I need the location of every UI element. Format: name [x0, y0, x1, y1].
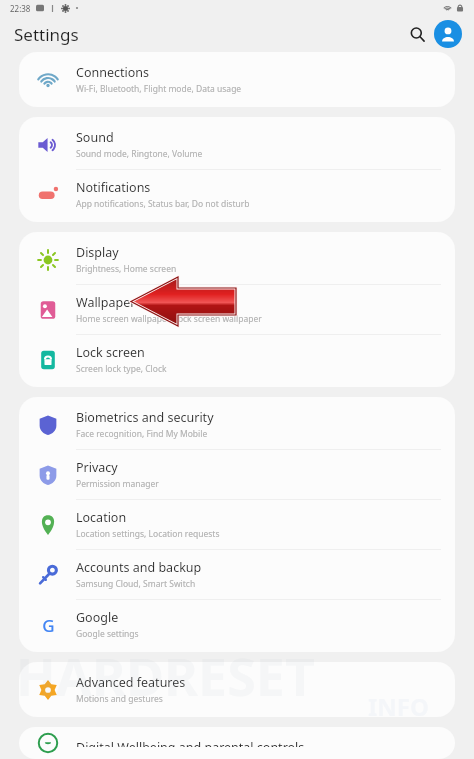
button[interactable]: Notifications	[19, 170, 455, 219]
button[interactable]: Connections	[19, 55, 455, 104]
staticText: Digital Wellbeing and parental controls	[76, 739, 305, 747]
staticText: Advanced features	[76, 674, 186, 691]
button[interactable]: Search	[402, 19, 432, 49]
staticText: Biometrics and security	[76, 409, 214, 426]
staticText: Screen lock type, Clock	[76, 363, 167, 375]
staticText: 22:38	[10, 3, 31, 14]
staticText: Face recognition, Find My Mobile	[76, 428, 208, 440]
staticText: Settings	[14, 23, 79, 46]
button[interactable]: Account	[434, 20, 462, 48]
staticText: App notifications, Status bar, Do not di…	[76, 198, 250, 210]
button[interactable]: Lock screen	[19, 335, 455, 384]
button[interactable]: Accounts and backup	[19, 550, 455, 599]
staticText: Home screen wallpaper, Lock screen wallp…	[76, 313, 262, 325]
button[interactable]: Digital Wellbeing and parental controls	[19, 730, 455, 756]
staticText: Location	[76, 509, 127, 526]
staticText: Connections	[76, 64, 149, 81]
staticText: Accounts and backup	[76, 559, 202, 576]
staticText: Permission manager	[76, 478, 159, 490]
button[interactable]: Wallpaper	[19, 285, 455, 334]
staticText: Samsung Cloud, Smart Switch	[76, 578, 196, 590]
staticText: Display	[76, 244, 119, 261]
staticText: Wallpaper	[76, 294, 136, 311]
staticText: Google settings	[76, 628, 139, 640]
staticText: INFO	[368, 690, 430, 723]
button[interactable]: G	[19, 600, 455, 649]
staticText: Sound	[76, 129, 114, 146]
staticText: Motions and gestures	[76, 693, 163, 705]
staticText: Lock screen	[76, 344, 145, 361]
button[interactable]: Advanced features	[19, 665, 455, 714]
button[interactable]: Display	[19, 235, 455, 284]
staticText: Privacy	[76, 459, 118, 476]
staticText: Location settings, Location requests	[76, 528, 220, 540]
button[interactable]: Sound	[19, 120, 455, 169]
staticText: HARDRESET	[16, 640, 315, 711]
staticText: Google	[76, 609, 119, 626]
button[interactable]: Privacy	[19, 450, 455, 499]
button[interactable]: Location	[19, 500, 455, 549]
staticText: Sound mode, Ringtone, Volume	[76, 148, 203, 160]
staticText: Brightness, Home screen	[76, 263, 177, 275]
staticText: G	[42, 614, 55, 636]
staticText: Notifications	[76, 179, 151, 196]
staticText: Wi-Fi, Bluetooth, Flight mode, Data usag…	[76, 83, 242, 95]
button[interactable]: Biometrics and security	[19, 400, 455, 449]
